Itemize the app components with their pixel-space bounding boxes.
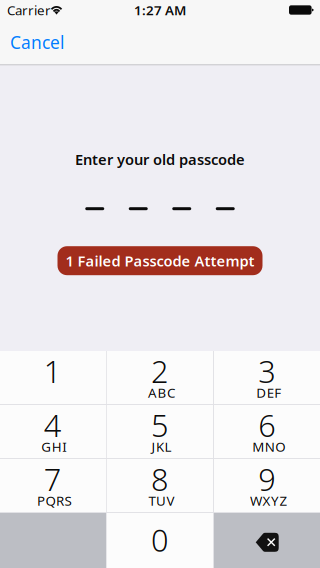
staticText: 0 <box>151 519 169 560</box>
staticText: Carrier <box>7 1 51 19</box>
button[interactable]: Delete <box>214 513 320 568</box>
button[interactable]: 2 <box>107 351 213 404</box>
staticText: 8 <box>151 459 169 499</box>
button[interactable]: 1 <box>0 351 106 404</box>
button[interactable]: 6 <box>214 405 320 458</box>
staticText: MNO <box>252 438 285 455</box>
button[interactable]: 9 <box>214 459 320 512</box>
staticText: Enter your old passcode <box>75 149 245 169</box>
staticText: 6 <box>258 405 276 445</box>
button[interactable]: 7 <box>0 459 106 512</box>
staticText: 9 <box>258 459 276 499</box>
staticText: 1:27 AM <box>134 1 186 19</box>
staticText: DEF <box>256 384 281 401</box>
staticText: 2 <box>151 351 169 391</box>
staticText: Cancel <box>10 31 64 54</box>
staticText: GHI <box>41 438 67 455</box>
staticText: 4 <box>44 405 62 445</box>
staticText: 3 <box>258 351 276 391</box>
button[interactable]: 0 <box>107 513 213 568</box>
staticText: 1 <box>44 351 62 391</box>
staticText: JKL <box>151 438 171 455</box>
staticText: 1 Failed Passcode Attempt <box>65 251 254 270</box>
staticText: PQRS <box>37 492 71 509</box>
button[interactable]: Cancel <box>0 20 78 64</box>
staticText: 5 <box>151 405 169 445</box>
staticText: TUV <box>148 492 174 509</box>
button[interactable]: 3 <box>214 351 320 404</box>
staticText: WXYZ <box>250 492 287 509</box>
staticText: ABC <box>148 384 175 401</box>
button[interactable]: 8 <box>107 459 213 512</box>
button[interactable]: 5 <box>107 405 213 458</box>
button[interactable]: 4 <box>0 405 106 458</box>
staticText: 7 <box>44 459 62 499</box>
